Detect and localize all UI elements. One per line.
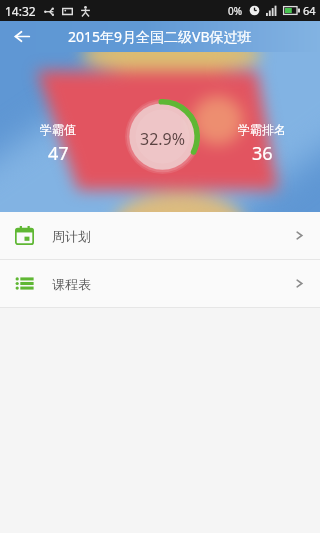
staticText: 14:32	[5, 3, 36, 19]
button[interactable]: 课程表	[0, 260, 320, 307]
staticText: 64	[303, 3, 316, 18]
staticText: 周计划	[52, 228, 91, 244]
staticText: 课程表	[52, 276, 91, 292]
button[interactable]: 周计划	[0, 212, 320, 259]
staticText: 2015年9月全国二级VB保过班	[68, 27, 252, 46]
staticText: 学霸排名	[238, 122, 286, 137]
staticText: 47	[48, 141, 69, 166]
staticText: 学霸值	[40, 122, 76, 137]
staticText: 36	[252, 141, 273, 166]
button[interactable]: Back	[0, 21, 42, 52]
staticText: 32.9%	[140, 128, 186, 150]
staticText: 0%	[228, 4, 243, 18]
